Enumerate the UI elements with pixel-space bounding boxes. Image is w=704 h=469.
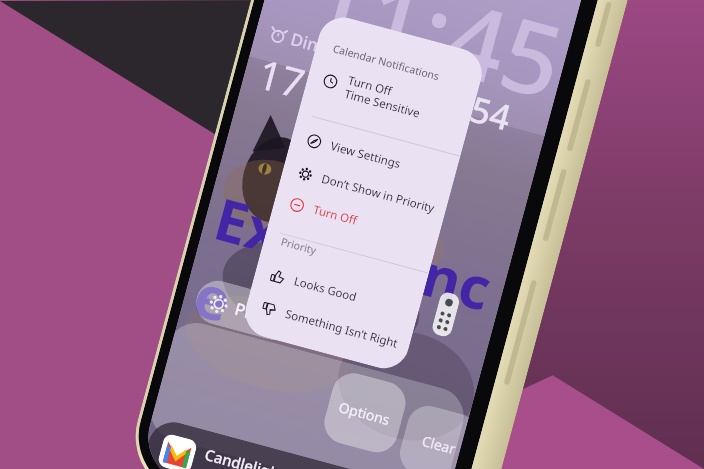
staticText: Priority bbox=[279, 234, 318, 257]
button[interactable]: Turn Off bbox=[271, 184, 441, 257]
button[interactable]: Candlelight by Fever bbox=[140, 416, 445, 469]
button[interactable]: Dinner bbox=[267, 21, 348, 64]
staticText: Experience bbox=[186, 178, 513, 407]
button[interactable]: Clear bbox=[395, 401, 469, 469]
button[interactable]: Something Isn’t Right bbox=[243, 288, 413, 361]
staticText: Something Isn’t Right bbox=[283, 306, 400, 352]
staticText: Candlelight by Fever bbox=[203, 444, 349, 469]
button[interactable]: Don’t Show in Priority bbox=[279, 153, 450, 226]
staticText: 17:30 bbox=[252, 46, 366, 124]
staticText: Calendar Notifications bbox=[331, 41, 441, 83]
button[interactable] bbox=[148, 317, 470, 469]
staticText: Options bbox=[337, 397, 393, 429]
staticText: 11:45 bbox=[295, 0, 578, 128]
staticText: 654 bbox=[446, 80, 517, 142]
staticText: Turn Off bbox=[311, 202, 359, 229]
staticText: Turn Off Time Sensitive bbox=[343, 72, 426, 121]
button[interactable]: Options bbox=[319, 368, 410, 457]
button[interactable]: Priority bbox=[191, 276, 301, 345]
staticText: Dinner bbox=[288, 27, 348, 64]
button[interactable]: Looks Good bbox=[252, 255, 422, 329]
staticText: View Settings bbox=[329, 138, 402, 172]
button[interactable]: Turn Off Time Sensitive bbox=[302, 53, 476, 141]
staticText: Looks Good bbox=[292, 273, 358, 305]
staticText: Clear bbox=[420, 431, 458, 458]
staticText: Priority bbox=[232, 297, 296, 335]
staticText: Don’t Show in Priority bbox=[320, 171, 437, 217]
button[interactable]: View Settings bbox=[288, 120, 458, 193]
